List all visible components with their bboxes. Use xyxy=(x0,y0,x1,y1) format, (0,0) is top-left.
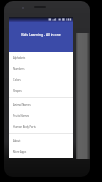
button[interactable]: About xyxy=(9,135,73,146)
staticText: Kids Learning - All in one xyxy=(21,32,61,37)
staticText: Shapes xyxy=(13,89,22,93)
staticText: Colors xyxy=(13,78,21,82)
staticText: Animal Names xyxy=(13,103,31,107)
button[interactable]: Alphabets xyxy=(9,52,73,63)
staticText: Human Body Parts xyxy=(13,125,36,129)
staticText: Fruits Names xyxy=(13,114,30,118)
button[interactable]: Numbers xyxy=(9,63,73,74)
button[interactable]: Human Body Parts xyxy=(9,121,73,132)
button[interactable]: Animal Names xyxy=(9,99,73,110)
staticText: More Apps xyxy=(13,150,27,154)
button[interactable]: More Apps xyxy=(9,146,73,157)
staticText: Numbers xyxy=(13,67,25,71)
staticText: Alphabets xyxy=(13,56,26,60)
staticText: About xyxy=(13,139,21,143)
button[interactable]: Shapes xyxy=(9,85,73,96)
button[interactable]: Fruits Names xyxy=(9,110,73,121)
button[interactable]: Colors xyxy=(9,74,73,85)
